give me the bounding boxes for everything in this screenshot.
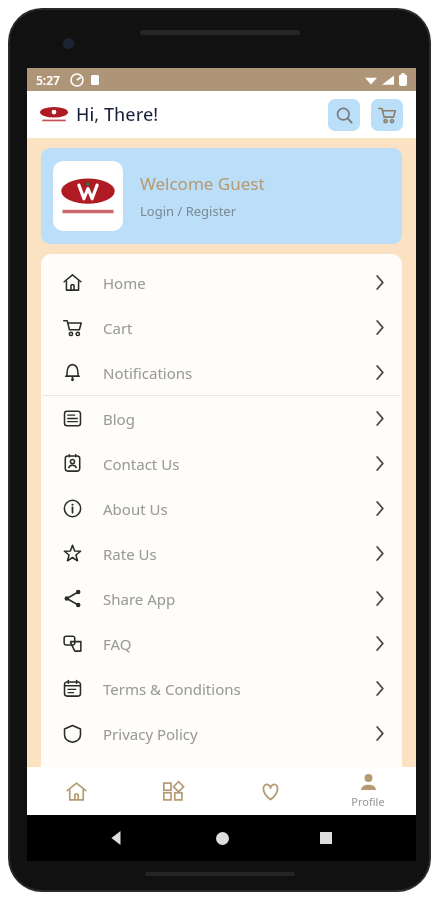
button[interactable]: Search (328, 99, 360, 131)
button[interactable]: Contact Us (41, 441, 402, 486)
staticText: Blog (103, 409, 135, 429)
staticText: 5:27 (36, 72, 60, 88)
button[interactable]: Home (207, 823, 237, 853)
button[interactable]: Cart (41, 305, 402, 350)
staticText: Home (103, 273, 146, 293)
staticText: Rate Us (103, 544, 157, 564)
staticText: Profile (351, 794, 385, 809)
button[interactable]: Terms & Conditions (41, 666, 402, 711)
staticText: Contact Us (103, 454, 180, 474)
staticText: FAQ (103, 634, 132, 654)
button[interactable]: Categories (125, 767, 222, 815)
button[interactable]: Home (41, 260, 402, 305)
button[interactable]: Recents (311, 823, 341, 853)
button[interactable]: Share App (41, 576, 402, 621)
staticText: About Us (103, 499, 168, 519)
staticText: Share App (103, 589, 176, 609)
button[interactable]: About Us (41, 486, 402, 531)
staticText: Login / Register (140, 202, 237, 220)
staticText: Welcome Guest (140, 172, 265, 195)
staticText: Hi, There! (76, 102, 159, 127)
button[interactable]: Profile (319, 767, 416, 815)
button[interactable]: Welcome Guest (41, 148, 402, 244)
staticText: Privacy Policy (103, 724, 198, 744)
button[interactable]: Rate Us (41, 531, 402, 576)
button[interactable]: Wishlist (222, 767, 319, 815)
button[interactable]: Home (27, 767, 125, 815)
button[interactable]: Blog (41, 396, 402, 441)
button[interactable]: Back (102, 823, 132, 853)
button[interactable]: Cart (371, 99, 403, 131)
button[interactable]: Notifications (41, 350, 402, 395)
button[interactable]: FAQ (41, 621, 402, 666)
staticText: Terms & Conditions (103, 679, 241, 699)
button[interactable]: Privacy Policy (41, 711, 402, 756)
staticText: Notifications (103, 363, 193, 383)
staticText: Cart (103, 318, 133, 338)
